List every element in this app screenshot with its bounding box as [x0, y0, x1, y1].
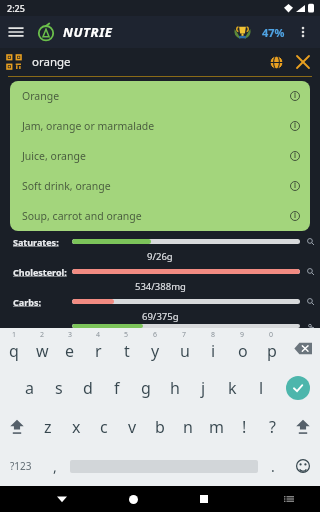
button[interactable]: Recent apps [191, 486, 217, 512]
button[interactable]: . [260, 446, 286, 486]
button[interactable]: Sugar: [0, 324, 320, 328]
button[interactable]: Soup, carrot and orange [10, 201, 310, 231]
button[interactable]: c [90, 407, 118, 446]
button[interactable]: n [174, 407, 202, 446]
staticText: Carbs: [13, 296, 41, 308]
button[interactable]: Saturates: [0, 234, 320, 249]
button[interactable]: Soft drink, orange [10, 171, 310, 201]
staticText: 9/26g [147, 250, 173, 263]
button[interactable]: d [73, 368, 102, 407]
staticText: 2:25 [7, 2, 25, 14]
button[interactable]: Shift [0, 407, 34, 446]
staticText: h [170, 377, 180, 399]
button[interactable]: More options [288, 17, 318, 47]
staticText: Cholesterol: [13, 266, 67, 278]
staticText: b [155, 416, 165, 438]
button[interactable]: v [118, 407, 146, 446]
staticText: r [95, 340, 102, 362]
staticText: ! [242, 416, 247, 438]
staticText: 534/388mg [135, 280, 186, 293]
staticText: orange [32, 54, 263, 70]
staticText: 3 [68, 330, 73, 340]
button[interactable]: Keyboard options [276, 486, 302, 512]
staticText: o [238, 340, 248, 362]
button[interactable]: 4 [84, 328, 112, 368]
other: Details for Saturates: [300, 234, 320, 249]
staticText: c [100, 416, 108, 438]
button[interactable]: Orange [10, 81, 310, 111]
button[interactable]: 5 [112, 328, 141, 368]
button[interactable]: Carbs: [0, 294, 320, 309]
button[interactable]: z [34, 407, 62, 446]
staticText: l [259, 377, 264, 399]
button[interactable]: Jam, orange or marmalade [10, 111, 310, 141]
button[interactable]: h [160, 368, 189, 407]
button[interactable]: ! [230, 407, 258, 446]
staticText: i [211, 340, 216, 362]
other: Details for Carbs: [300, 294, 320, 309]
staticText: d [83, 377, 93, 399]
staticText: e [65, 340, 75, 362]
button[interactable]: 7 [170, 328, 199, 368]
button[interactable]: g [131, 368, 160, 407]
staticText: 69/375g [142, 310, 179, 323]
button[interactable]: Done [276, 368, 320, 407]
button[interactable]: Scan barcode [0, 48, 28, 76]
button[interactable]: 6 [141, 328, 170, 368]
button[interactable]: Achievements [227, 17, 257, 47]
button[interactable]: , [42, 446, 68, 486]
staticText: t [124, 340, 130, 362]
button[interactable]: j [189, 368, 218, 407]
button[interactable]: 8 [199, 328, 228, 368]
button[interactable]: m [202, 407, 230, 446]
staticText: n [183, 416, 193, 438]
button[interactable]: 0 [257, 328, 286, 368]
button[interactable]: 9 [228, 328, 257, 368]
staticText: Soup, carrot and orange [22, 209, 290, 223]
staticText: m [209, 416, 224, 438]
button[interactable]: ?123 [0, 446, 42, 486]
button[interactable]: Cholesterol: [0, 264, 320, 279]
staticText: a [25, 377, 34, 399]
button[interactable]: Language [263, 49, 289, 75]
button[interactable]: k [218, 368, 247, 407]
button[interactable]: 1 [0, 328, 28, 368]
staticText: z [44, 416, 52, 438]
staticText: y [151, 340, 160, 362]
button[interactable]: Clear search [289, 48, 317, 76]
staticText: NUTRIE [63, 23, 113, 41]
button[interactable]: Backspace [286, 328, 320, 368]
staticText: 8 [211, 330, 216, 340]
button[interactable]: Back [49, 486, 75, 512]
staticText: s [55, 377, 63, 399]
button[interactable]: 2 [28, 328, 56, 368]
staticText: q [9, 340, 19, 362]
staticText: 7 [182, 330, 187, 340]
staticText: Juice, orange [22, 149, 290, 163]
other: Details for Sugar: [300, 324, 320, 328]
button[interactable]: s [44, 368, 73, 407]
button[interactable]: Emoji [286, 446, 320, 486]
button[interactable]: b [146, 407, 174, 446]
button[interactable]: 47% [259, 19, 288, 46]
staticText: f [114, 377, 120, 399]
button[interactable]: 3 [56, 328, 84, 368]
button[interactable]: f [102, 368, 131, 407]
button[interactable]: Open navigation menu [0, 16, 32, 48]
button[interactable]: ? [258, 407, 286, 446]
staticText: ?123 [10, 459, 32, 473]
button[interactable]: Juice, orange [10, 141, 310, 171]
button[interactable]: l [247, 368, 276, 407]
staticText: 0 [269, 330, 274, 340]
staticText: p [267, 340, 277, 362]
button[interactable]: Home [120, 486, 146, 512]
staticText: 2 [40, 330, 45, 340]
button[interactable]: Shift [286, 407, 320, 446]
staticText: w [36, 340, 49, 362]
staticText: . [271, 457, 275, 476]
button[interactable]: x [62, 407, 90, 446]
staticText: u [180, 340, 190, 362]
button[interactable]: a [14, 368, 44, 407]
staticText: , [53, 457, 57, 476]
